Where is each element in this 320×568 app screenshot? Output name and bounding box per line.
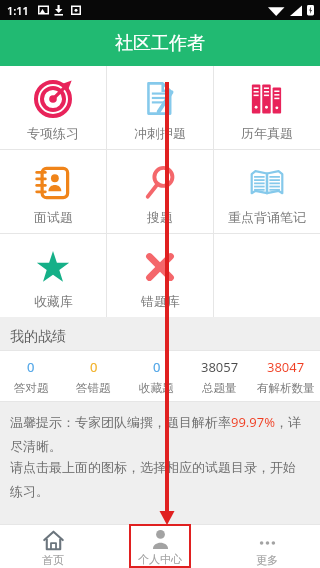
- staticText: 面试题: [34, 209, 73, 225]
- staticText: 38047: [267, 358, 305, 376]
- staticText: 我的战绩: [10, 328, 66, 346]
- staticText: 38057: [201, 358, 239, 376]
- button[interactable]: 专项练习: [0, 66, 106, 149]
- button[interactable]: 面试题: [0, 150, 106, 233]
- staticText: 总题量: [202, 381, 237, 395]
- button[interactable]: 38057: [188, 351, 251, 401]
- staticText: 搜题: [147, 209, 173, 225]
- button[interactable]: 搜题: [107, 150, 213, 233]
- staticText: 首页: [42, 553, 64, 567]
- staticText: 收藏库: [34, 293, 73, 309]
- staticText: 0: [27, 358, 35, 376]
- button[interactable]: 更多: [256, 525, 278, 567]
- staticText: 错题库: [141, 293, 180, 309]
- button[interactable]: 首页: [42, 525, 64, 567]
- button[interactable]: 0: [0, 351, 62, 401]
- button[interactable]: 0: [125, 351, 188, 401]
- staticText: 冲刺押题: [134, 125, 186, 141]
- staticText: 答错题: [76, 381, 111, 395]
- button[interactable]: 0: [62, 351, 125, 401]
- staticText: 专项练习: [27, 125, 79, 141]
- staticText: 温馨提示：专家团队编撰，题目解析率99.97%，详尽清晰。: [10, 413, 308, 455]
- staticText: 重点背诵笔记: [228, 209, 306, 225]
- staticText: 答对题: [14, 381, 49, 395]
- staticText: 请点击最上面的图标，选择相应的试题目录，开始练习。: [10, 459, 308, 500]
- staticText: 个人中心: [138, 552, 182, 566]
- staticText: 有解析数量: [257, 381, 315, 395]
- staticText: 更多: [256, 553, 278, 567]
- button[interactable]: 历年真题: [214, 66, 320, 149]
- staticText: 社区工作者: [115, 32, 205, 55]
- button[interactable]: 收藏库: [0, 234, 106, 317]
- button[interactable]: 重点背诵笔记: [214, 150, 320, 233]
- button[interactable]: 个人中心: [129, 524, 191, 568]
- button[interactable]: 38047: [251, 351, 320, 401]
- staticText: 历年真题: [241, 125, 293, 141]
- button[interactable]: 错题库: [107, 234, 213, 317]
- other: 个人中心: [150, 529, 171, 550]
- staticText: 1:11: [7, 3, 29, 18]
- staticText: 0: [90, 358, 98, 376]
- staticText: 0: [153, 358, 161, 376]
- button[interactable]: 冲刺押题: [107, 66, 213, 149]
- other: 首页: [43, 530, 64, 551]
- other: 更多: [257, 530, 278, 551]
- staticText: 收藏题: [139, 381, 174, 395]
